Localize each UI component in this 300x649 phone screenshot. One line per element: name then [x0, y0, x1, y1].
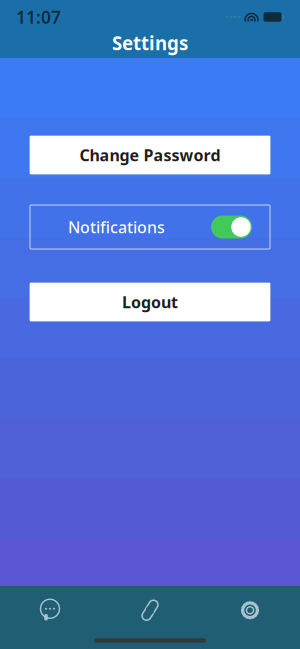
staticText: Logout	[122, 291, 178, 313]
staticText: Notifications	[68, 216, 165, 238]
button[interactable]: Notifications	[30, 205, 270, 249]
staticText: Settings	[112, 31, 188, 55]
staticText: Change Password	[79, 144, 220, 166]
button[interactable]: Messages	[0, 590, 100, 630]
button[interactable]: Calls	[100, 590, 200, 630]
button[interactable]: Settings	[200, 590, 300, 630]
staticText: 11:07	[16, 5, 61, 28]
button[interactable]: Change Password	[30, 136, 270, 174]
button[interactable]: Logout	[30, 283, 270, 321]
